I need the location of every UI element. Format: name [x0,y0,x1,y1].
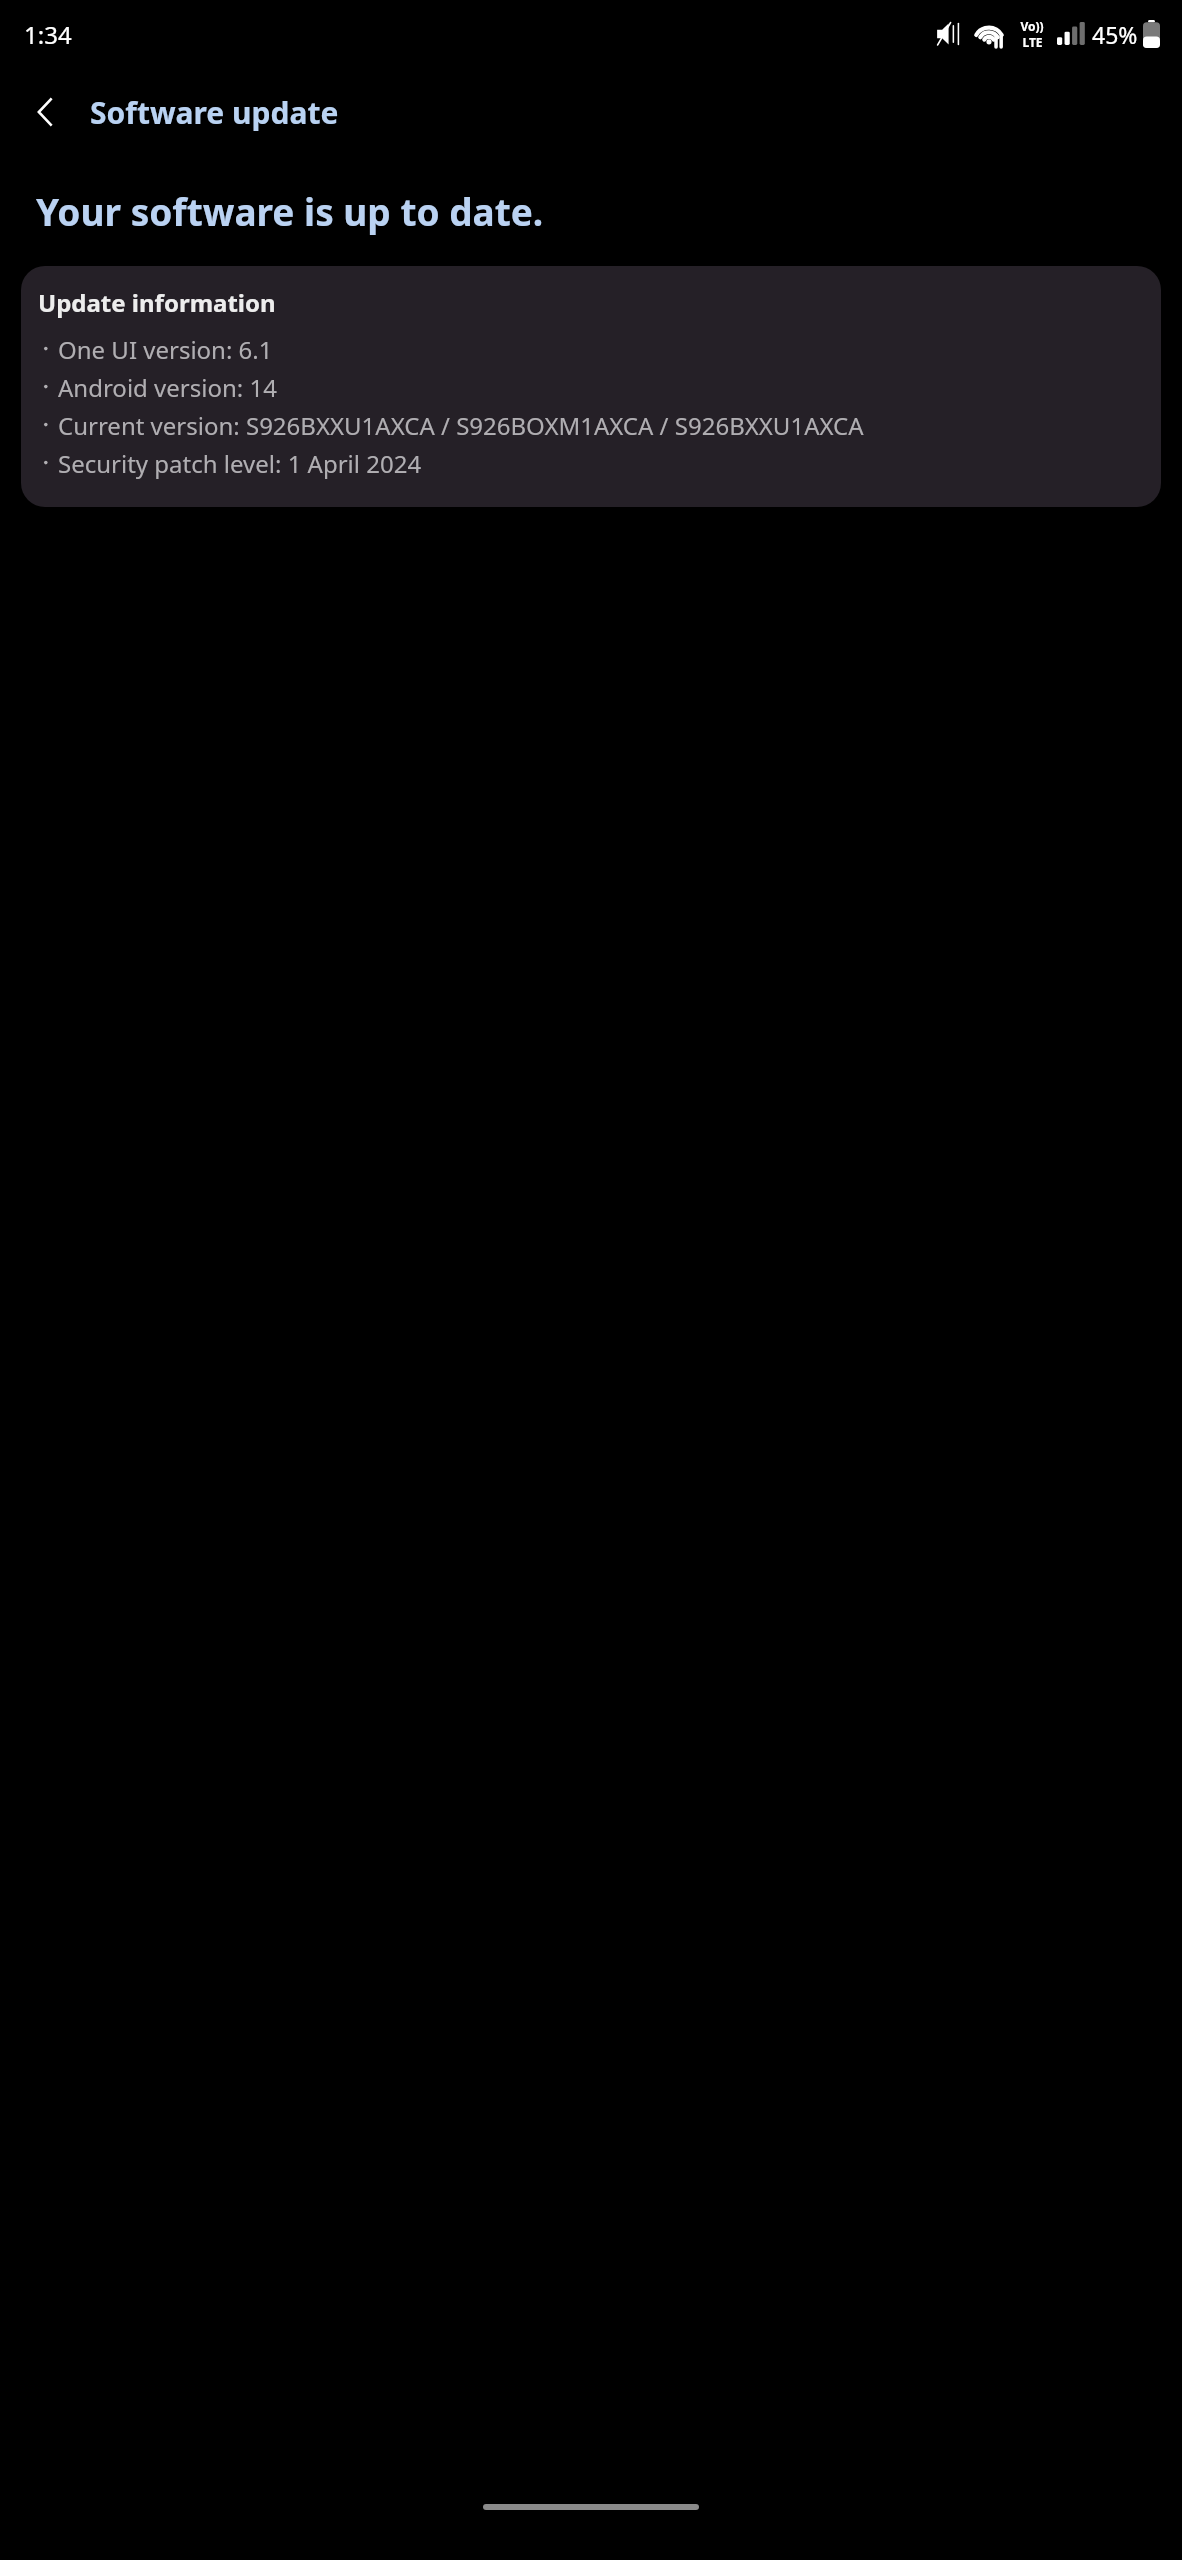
button[interactable]: Back [14,80,78,144]
staticText: LTE [1022,34,1043,50]
staticText: Software update [90,92,339,133]
staticText: Security patch level: 1 April 2024 [58,447,422,480]
staticText: 1:34 [24,18,72,51]
staticText: One UI version: 6.1 [58,333,273,366]
staticText: Your software is up to date. [36,186,544,236]
staticText: 45% [1092,19,1138,50]
button[interactable]: Update information [21,266,1161,507]
staticText: Android version: 14 [58,371,277,404]
staticText: Vo)) [1020,18,1044,34]
staticText: Current version: S926BXXU1AXCA / S926BOX… [58,409,864,442]
staticText: Update information [38,286,276,319]
